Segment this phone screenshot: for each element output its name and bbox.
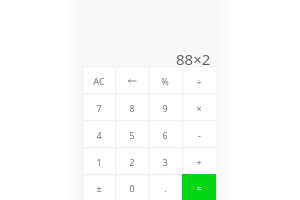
button[interactable]: 4 bbox=[82, 120, 115, 147]
staticText: 3 bbox=[162, 156, 168, 168]
button[interactable]: = bbox=[182, 174, 216, 200]
button[interactable]: 5 bbox=[115, 120, 148, 147]
other: Backspace bbox=[124, 72, 140, 88]
staticText: 88×2 bbox=[176, 49, 211, 69]
staticText: + bbox=[196, 156, 202, 168]
staticText: 6 bbox=[162, 129, 168, 141]
staticText: 4 bbox=[96, 129, 102, 141]
staticText: ÷ bbox=[196, 75, 202, 87]
staticText: × bbox=[196, 102, 202, 114]
button[interactable]: 8 bbox=[115, 93, 148, 120]
button[interactable]: 1 bbox=[82, 147, 115, 174]
button[interactable]: 9 bbox=[148, 93, 182, 120]
staticText: . bbox=[164, 182, 167, 194]
staticText: 9 bbox=[162, 102, 168, 114]
staticText: 7 bbox=[96, 102, 102, 114]
staticText: 0 bbox=[129, 182, 135, 194]
button[interactable]: - bbox=[182, 120, 216, 147]
staticText: 8 bbox=[129, 102, 135, 114]
staticText: % bbox=[161, 75, 169, 87]
staticText: = bbox=[196, 182, 202, 194]
button[interactable]: AC bbox=[82, 66, 115, 93]
button[interactable]: % bbox=[148, 66, 182, 93]
staticText: ± bbox=[96, 182, 102, 194]
staticText: AC bbox=[93, 75, 105, 87]
staticText: - bbox=[198, 129, 201, 141]
button[interactable]: 7 bbox=[82, 93, 115, 120]
button[interactable]: ± bbox=[82, 174, 115, 200]
button[interactable]: 0 bbox=[115, 174, 148, 200]
staticText: 2 bbox=[129, 156, 135, 168]
staticText: 1 bbox=[96, 156, 102, 168]
button[interactable]: Backspace bbox=[115, 66, 148, 93]
button[interactable]: . bbox=[148, 174, 182, 200]
button[interactable]: + bbox=[182, 147, 216, 174]
button[interactable]: 2 bbox=[115, 147, 148, 174]
button[interactable]: ÷ bbox=[182, 66, 216, 93]
button[interactable]: 6 bbox=[148, 120, 182, 147]
button[interactable]: 3 bbox=[148, 147, 182, 174]
button[interactable]: × bbox=[182, 93, 216, 120]
staticText: 5 bbox=[129, 129, 135, 141]
